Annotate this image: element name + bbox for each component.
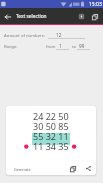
button[interactable]: Generate xyxy=(12,165,33,174)
staticText: 55 32 11 xyxy=(33,130,69,142)
staticText: Amount of numbers: xyxy=(4,33,45,39)
staticText: 12 xyxy=(56,32,62,38)
staticText: 15:03 xyxy=(89,1,102,8)
staticText: 1 xyxy=(59,43,62,49)
button[interactable]: Copy numbers xyxy=(66,162,79,175)
staticText: from xyxy=(46,44,56,50)
staticText: to xyxy=(72,44,77,50)
button[interactable]: Copy xyxy=(88,10,101,23)
button[interactable]: Select all xyxy=(75,10,88,23)
button[interactable]: Back xyxy=(1,10,14,23)
staticText: Text selection xyxy=(16,13,47,20)
staticText: Generate xyxy=(14,167,31,172)
button[interactable]: Share xyxy=(82,162,95,175)
staticText: 99 xyxy=(79,43,85,49)
staticText: 11 34 35 xyxy=(33,140,69,152)
staticText: 24 22 50 xyxy=(33,110,69,122)
staticText: 30 50 85 xyxy=(33,120,69,132)
staticText: Range: xyxy=(4,44,18,50)
